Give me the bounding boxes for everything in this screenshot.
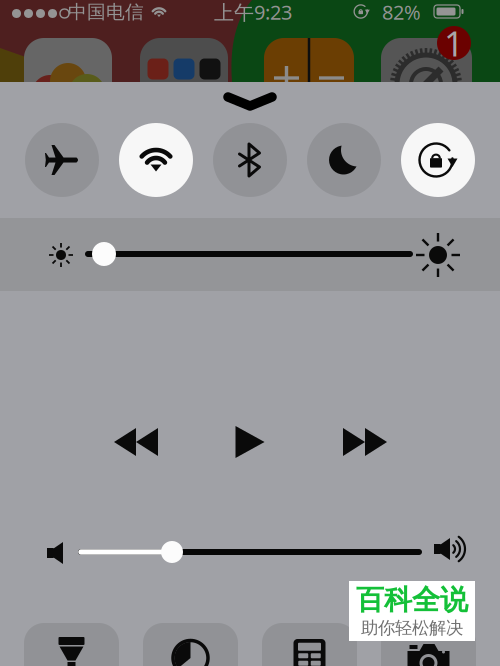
button[interactable]: Flashlight (24, 623, 119, 666)
button[interactable]: Do Not Disturb (307, 123, 381, 197)
button[interactable]: Play (213, 415, 287, 469)
staticText: 百科全说 (356, 583, 468, 617)
button[interactable]: Next Track (328, 415, 402, 469)
staticText: 82% (382, 0, 421, 25)
staticText: 助你轻松解决 (361, 617, 463, 639)
button[interactable]: Airplane Mode (25, 123, 99, 197)
staticText: 1 (444, 20, 464, 66)
button[interactable]: Camera (381, 623, 476, 666)
button[interactable]: Timer (143, 623, 238, 666)
button[interactable]: Bluetooth (213, 123, 287, 197)
button[interactable]: Calculator (262, 623, 357, 666)
button[interactable]: Rotation Lock (401, 123, 475, 197)
button[interactable]: Previous Track (99, 415, 173, 469)
staticText: 上午9:23 (214, 0, 292, 25)
button[interactable]: Wi-Fi (119, 123, 193, 197)
staticText: 中国电信 (68, 0, 144, 23)
